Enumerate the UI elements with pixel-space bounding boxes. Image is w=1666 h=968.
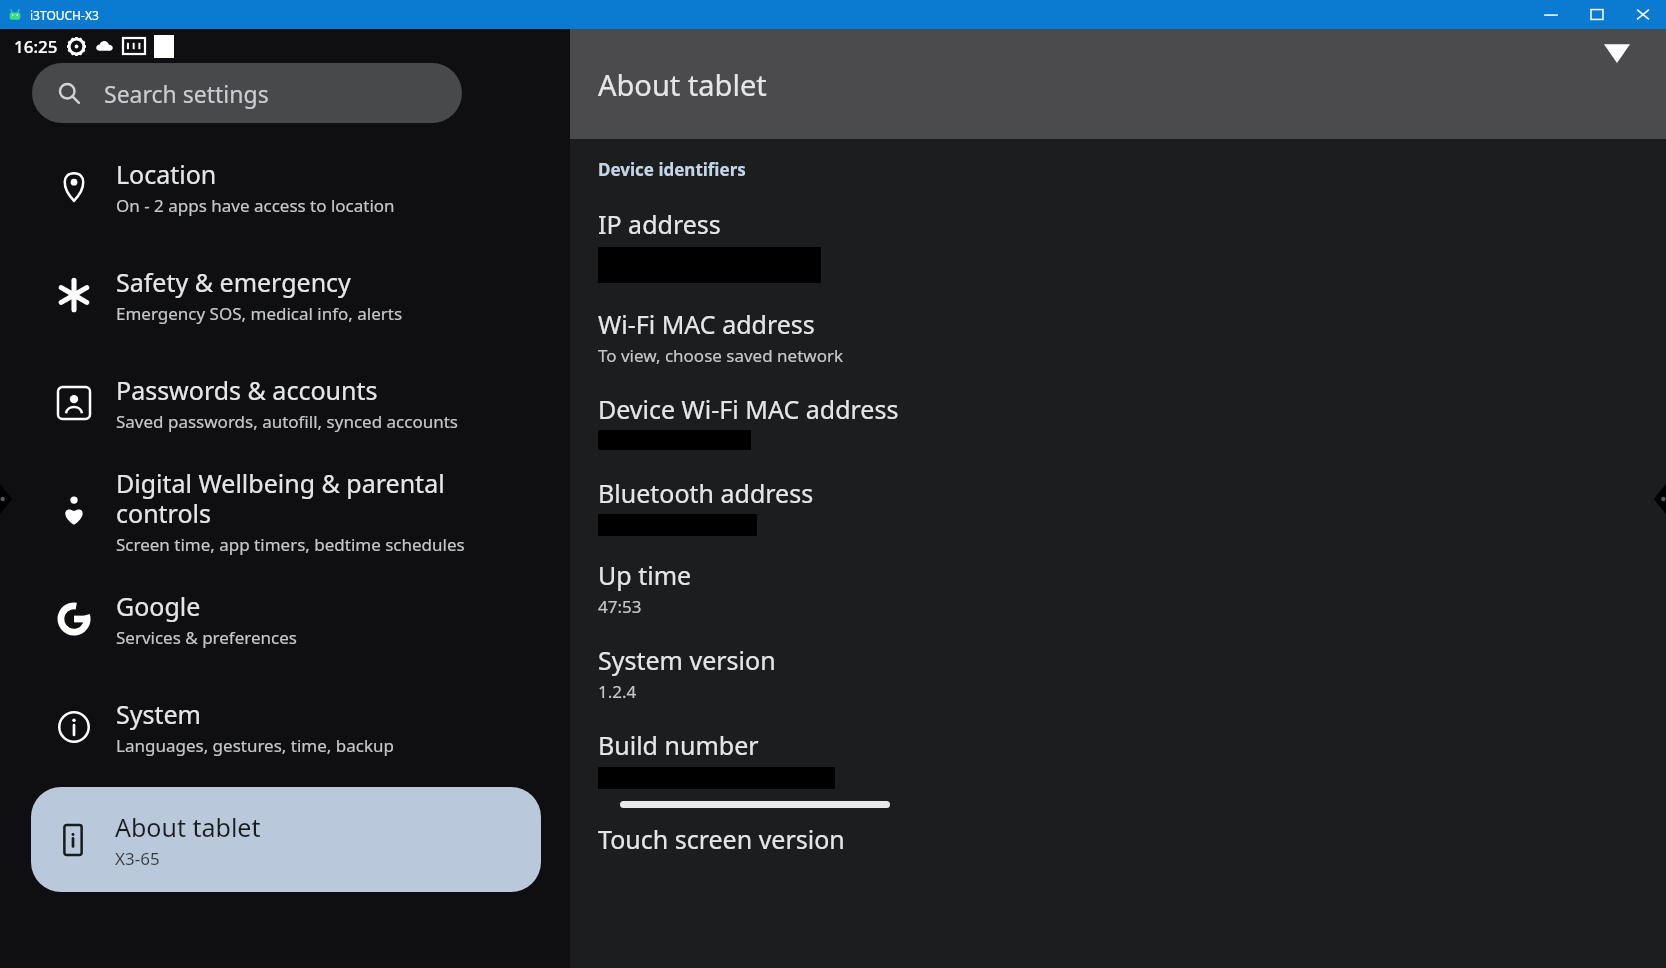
staticText: Screen time, app timers, bedtime schedul… (116, 533, 465, 556)
button[interactable]: Minimize (1528, 0, 1574, 29)
staticText: Services & preferences (116, 626, 297, 649)
button[interactable]: About tablet (31, 787, 541, 892)
button[interactable]: System version (598, 643, 1666, 703)
other: Forward gesture (1644, 456, 1666, 542)
button[interactable]: System (0, 673, 570, 781)
staticText: About tablet (115, 810, 261, 844)
staticText: Google (116, 589, 201, 623)
button[interactable]: Search settings (32, 63, 462, 123)
staticText: Bluetooth address (598, 476, 814, 510)
staticText: 1.2.4 (598, 680, 637, 703)
button[interactable]: Digital Wellbeing & parental controls (0, 457, 570, 565)
other: Wi-Fi (1604, 37, 1630, 63)
staticText: i3TOUCH-X3 (30, 7, 99, 23)
staticText: Languages, gestures, time, backup (116, 734, 395, 757)
staticText: 47:53 (598, 595, 642, 618)
button[interactable]: Maximize (1574, 0, 1620, 29)
button[interactable]: Passwords & accounts (0, 349, 570, 457)
staticText: System (116, 697, 201, 731)
button[interactable]: Device Wi-Fi MAC address (598, 392, 1666, 450)
staticText: Build number (598, 728, 759, 762)
button[interactable]: Wi-Fi MAC address (598, 307, 1666, 367)
button[interactable]: Bluetooth address (598, 476, 1666, 536)
staticText: Passwords & accounts (116, 373, 378, 407)
staticText: About tablet (598, 65, 767, 104)
button[interactable]: Google (0, 565, 570, 673)
staticText: Touch screen version (598, 822, 845, 856)
staticText: Wi-Fi MAC address (598, 307, 815, 341)
staticText: 16:25 (14, 35, 58, 58)
staticText: Safety & emergency (116, 265, 351, 299)
staticText: Digital Wellbeing & parental controls (116, 466, 445, 530)
button[interactable]: Location (0, 133, 570, 241)
button[interactable]: Safety & emergency (0, 241, 570, 349)
staticText: Up time (598, 558, 692, 592)
staticText: Search settings (104, 78, 269, 109)
staticText: Saved passwords, autofill, synced accoun… (116, 410, 458, 433)
button[interactable]: Build number (598, 728, 1666, 789)
staticText: Device Wi-Fi MAC address (598, 392, 899, 426)
button[interactable]: Up time (598, 558, 1666, 618)
staticText: Device identifiers (598, 158, 746, 181)
staticText: System version (598, 643, 776, 677)
other: Back gesture (0, 456, 22, 542)
staticText: Location (116, 157, 217, 191)
staticText: On - 2 apps have access to location (116, 194, 395, 217)
staticText: To view, choose saved network (598, 344, 844, 367)
staticText: X3-65 (115, 847, 160, 870)
staticText: Emergency SOS, medical info, alerts (116, 302, 403, 325)
button[interactable]: Close (1620, 0, 1666, 29)
staticText: IP address (598, 207, 721, 241)
button[interactable]: IP address (598, 207, 1666, 283)
